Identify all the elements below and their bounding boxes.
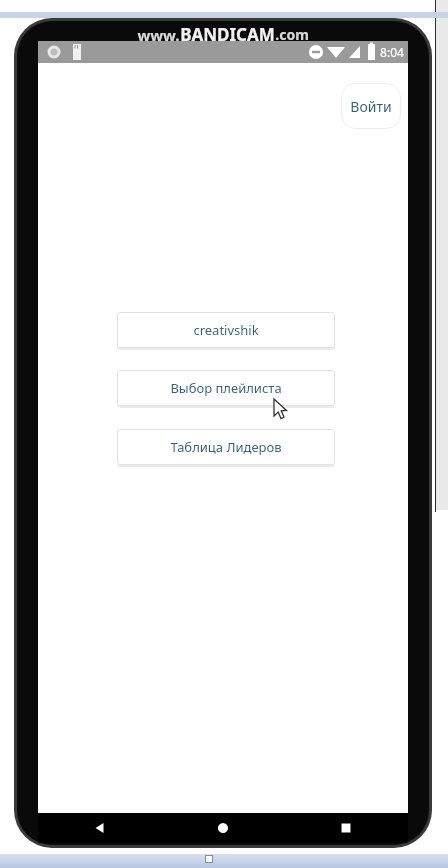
staticText: Выбор плейлиста <box>170 379 282 397</box>
button[interactable]: Recent apps <box>324 813 368 843</box>
button[interactable]: creativshik <box>117 312 335 348</box>
staticText: 8:04 <box>380 44 404 60</box>
staticText: .com <box>275 25 309 44</box>
button[interactable]: Back <box>78 813 122 843</box>
staticText: Таблица Лидеров <box>170 438 282 456</box>
staticText: BANDICAM <box>180 23 275 46</box>
staticText: www. <box>137 25 180 45</box>
button[interactable]: Выбор плейлиста <box>117 370 335 406</box>
button[interactable]: Home <box>201 813 245 843</box>
staticText: creativshik <box>193 321 259 339</box>
staticText: Войти <box>350 97 392 116</box>
button[interactable]: Войти <box>341 83 401 129</box>
button[interactable]: Таблица Лидеров <box>117 429 335 465</box>
